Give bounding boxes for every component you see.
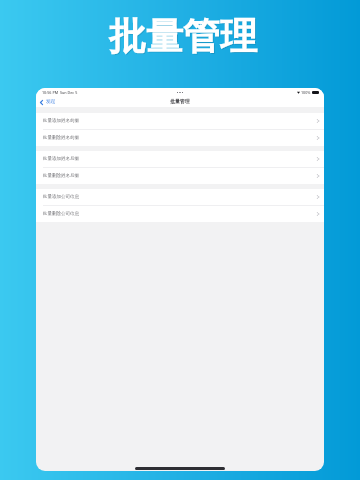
staticText: 10:56 PM Sun Dec 5 — [42, 90, 78, 95]
staticText: 批量添加公司信息 — [43, 194, 79, 200]
staticText: 批量管理 — [3, 13, 360, 60]
staticText: 批量删除公司信息 — [43, 211, 79, 217]
staticText: 批量管理 — [170, 98, 190, 104]
staticText: 批量删除姓名后缀 — [43, 173, 79, 179]
staticText: 批量管理 — [4, 14, 360, 61]
staticText: 批量添加姓名后缀 — [43, 156, 79, 162]
staticText: 发现 — [46, 99, 56, 105]
staticText: 批量删除姓名前缀 — [43, 135, 79, 141]
staticText: 批量添加姓名前缀 — [43, 118, 79, 124]
button[interactable]: 批量添加姓名后缀 — [36, 151, 324, 167]
other: Back — [40, 100, 43, 105]
button[interactable]: 批量删除姓名后缀 — [36, 168, 324, 184]
button[interactable]: 批量添加公司信息 — [36, 189, 324, 205]
button[interactable]: Back — [36, 97, 60, 107]
button[interactable]: 批量删除公司信息 — [36, 206, 324, 222]
button[interactable]: 批量添加姓名前缀 — [36, 113, 324, 129]
staticText: 100% — [301, 90, 311, 95]
button[interactable]: 批量删除姓名前缀 — [36, 130, 324, 146]
